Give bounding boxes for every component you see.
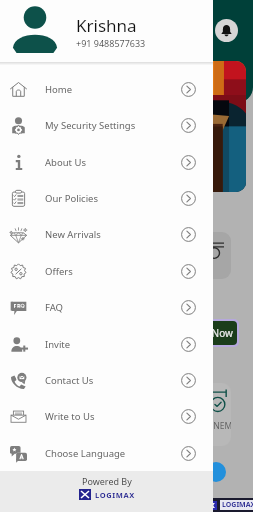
button[interactable]: FAQ — [0, 289, 213, 326]
staticText: FAQ — [45, 301, 64, 314]
staticText: Write to Us — [45, 410, 95, 423]
button[interactable]: Krishna — [0, 0, 213, 62]
staticText: +91 9488577633 — [76, 37, 146, 49]
button[interactable]: Home — [0, 71, 213, 107]
button[interactable]: Choose Language — [0, 435, 213, 471]
button[interactable]: Notifications — [215, 19, 238, 42]
button[interactable]: Book Now — [180, 321, 237, 345]
button[interactable]: Invite — [0, 326, 213, 362]
button[interactable]: New Arrivals — [0, 216, 213, 253]
staticText: About Us — [45, 156, 86, 169]
button[interactable]: My Security Settings — [0, 107, 213, 144]
staticText: Invite — [45, 338, 71, 351]
staticText: LOGIMAX — [95, 490, 135, 500]
staticText: My Security Settings — [45, 119, 136, 132]
staticText: Powered By — [82, 475, 132, 487]
staticText: X — [210, 501, 215, 510]
button[interactable]: Our Policies — [0, 180, 213, 216]
staticText: CINEMA — [205, 420, 231, 432]
staticText: New Arrivals — [45, 228, 101, 241]
staticText: Book Now — [185, 326, 233, 340]
button[interactable]: Offers — [0, 253, 213, 289]
staticText: Home — [45, 83, 73, 96]
button[interactable]: Contact Us — [0, 362, 213, 398]
staticText: Choose Language — [45, 447, 126, 460]
staticText: Our Policies — [45, 192, 99, 205]
staticText: Krishna — [76, 14, 137, 37]
button[interactable]: Write to Us — [0, 398, 213, 435]
button[interactable]: About Us — [0, 144, 213, 180]
staticText: LOGIMAX — [222, 500, 253, 510]
staticText: Contact Us — [45, 374, 94, 387]
staticText: Offers — [45, 265, 73, 278]
